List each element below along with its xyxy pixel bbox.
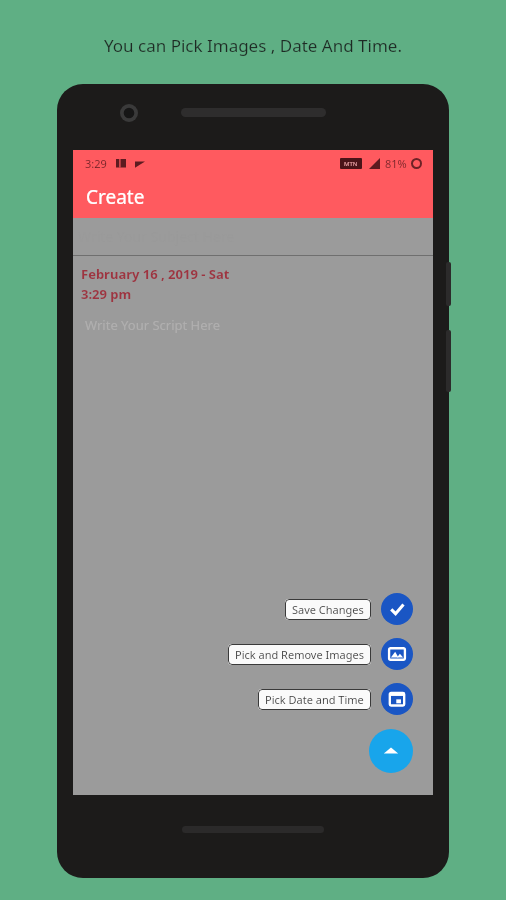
staticText: Pick Date and Time — [265, 692, 364, 707]
staticText: Pick and Remove Images — [235, 647, 364, 662]
staticText: 81% — [385, 156, 407, 171]
button[interactable]: Save Changes — [285, 593, 413, 625]
staticText: Save Changes — [292, 602, 364, 617]
button[interactable]: Close speed dial menu — [369, 729, 413, 773]
staticText: MTN — [344, 160, 358, 168]
staticText: Write Your Script Here — [85, 316, 221, 334]
staticText: 3:29 — [85, 156, 107, 171]
staticText: You can Pick Images , Date And Time. — [104, 34, 402, 57]
staticText: Create — [86, 184, 145, 210]
button[interactable]: Pick Date and Time — [258, 683, 413, 715]
button[interactable]: Pick and Remove Images — [228, 638, 413, 670]
staticText: 3:29 pm — [81, 285, 132, 303]
button[interactable]: Create — [73, 176, 433, 218]
staticText: February 16 , 2019 - Sat — [81, 265, 230, 283]
